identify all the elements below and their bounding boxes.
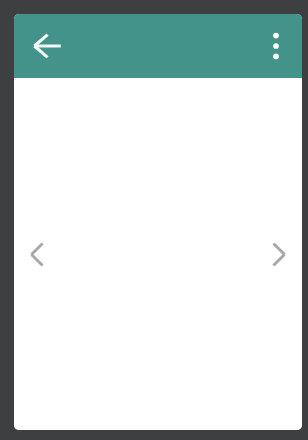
button[interactable]: More options [258, 26, 294, 66]
button[interactable]: Navigate up [28, 26, 68, 66]
button[interactable]: Next [259, 234, 299, 274]
button[interactable]: Previous [17, 234, 57, 274]
